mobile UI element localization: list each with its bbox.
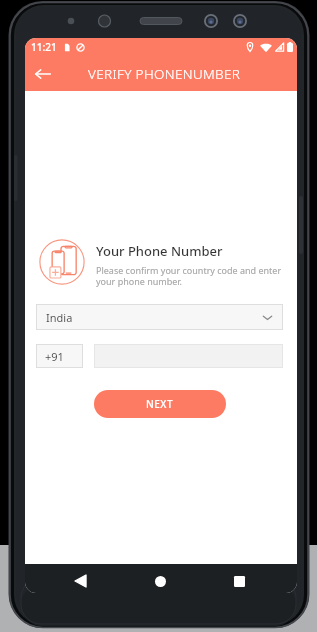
staticText: VERIFY PHONENUMBER	[88, 65, 241, 83]
staticText: +91	[45, 349, 64, 364]
staticText: 11:21	[31, 40, 57, 54]
staticText: Please confirm your country code and ent…	[96, 264, 292, 287]
button[interactable]: Back	[28, 59, 58, 89]
button[interactable]: Home	[146, 567, 174, 593]
button[interactable]: India	[36, 304, 283, 330]
button[interactable]	[94, 344, 283, 368]
staticText: Your Phone Number	[96, 242, 223, 260]
button[interactable]: Back	[66, 567, 94, 593]
button[interactable]: Recent apps	[225, 567, 253, 593]
staticText: India	[46, 310, 73, 325]
button[interactable]: +91	[36, 344, 83, 368]
staticText: NEXT	[146, 397, 174, 411]
button[interactable]: NEXT	[94, 390, 226, 418]
